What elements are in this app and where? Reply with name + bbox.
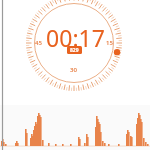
button[interactable]: Lap counter <box>67 46 82 54</box>
button[interactable]: Activity waveform <box>0 0 150 150</box>
staticText: 829 <box>70 47 79 54</box>
staticText: 15 <box>106 39 113 47</box>
button[interactable]: Timer dial <box>0 0 150 150</box>
staticText: 00:17 <box>46 22 105 53</box>
staticText: 30 <box>70 66 77 74</box>
staticText: 45 <box>35 39 42 47</box>
